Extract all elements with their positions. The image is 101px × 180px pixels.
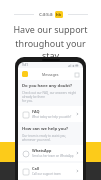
staticText: 9:41 [22,63,28,67]
staticText: How can we help you? [22,126,68,132]
staticText: Call [32,166,39,171]
staticText: Call our support team [32,172,61,176]
staticText: What today we help you with? [32,115,72,119]
button[interactable]: FAQ [18,106,83,122]
staticText: Have our support [13,23,88,35]
staticText: Do you have any doubt? [22,83,72,89]
staticText: hb [56,12,62,17]
staticText: Messages [42,72,59,77]
staticText: FAQ [32,109,40,114]
staticText: throughout your stay [6,37,95,61]
button[interactable]: WhatsApp [18,145,83,161]
button[interactable]: casa logo [22,71,28,77]
staticText: Check out our FAQ, our answers might alr… [22,91,79,103]
staticText: Our team is ready to assist you, wheneve… [22,134,79,142]
button[interactable]: Menu [74,72,79,77]
staticText: WhatsApp [32,148,52,153]
staticText: casa [39,10,53,18]
button[interactable]: Call [18,163,83,179]
staticText: Send us her team on WhatsApp [32,154,74,158]
